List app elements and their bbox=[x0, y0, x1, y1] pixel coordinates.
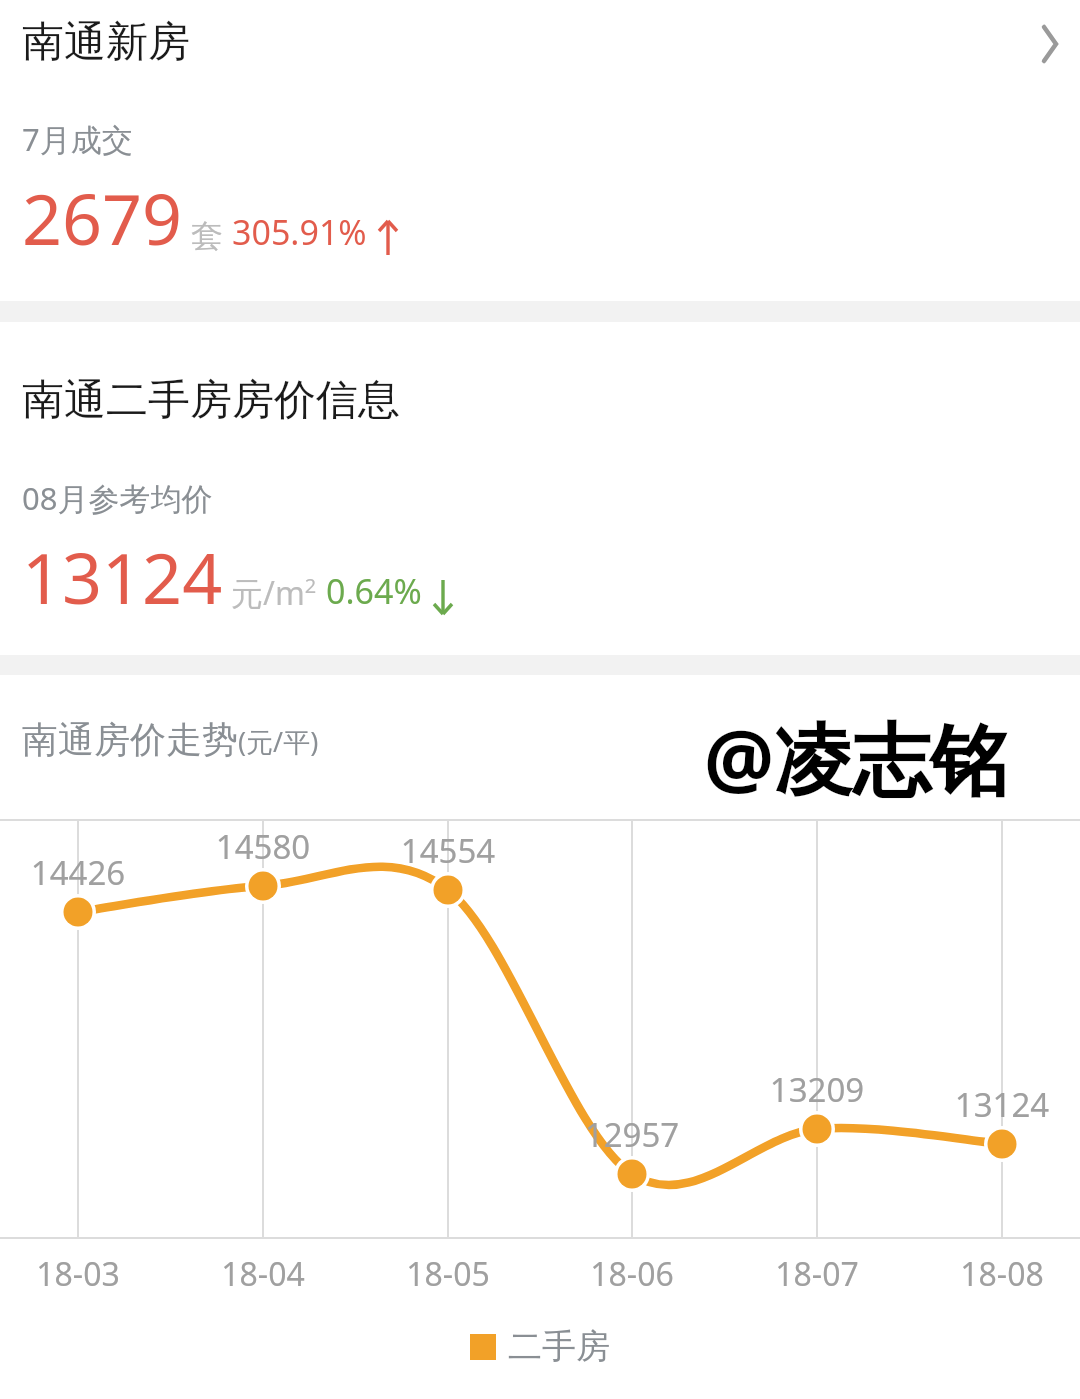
staticText: 元/m2 bbox=[231, 571, 317, 615]
staticText: 18-05 bbox=[388, 1252, 508, 1296]
button[interactable]: More, 南通新房 bbox=[1018, 12, 1080, 74]
staticText: 18-04 bbox=[203, 1252, 323, 1296]
staticText: 13124 bbox=[942, 1082, 1062, 1127]
staticText: 套 bbox=[191, 216, 223, 256]
staticText: 18-07 bbox=[757, 1252, 877, 1296]
staticText: 18-06 bbox=[572, 1252, 692, 1296]
staticText: 13124 bbox=[22, 529, 223, 624]
staticText: 12957 bbox=[572, 1112, 692, 1157]
staticText: 18-03 bbox=[18, 1252, 138, 1296]
staticText: 2679 bbox=[22, 170, 183, 265]
button[interactable]: 南通新房 bbox=[0, 0, 1080, 301]
staticText: 二手房 bbox=[508, 1325, 610, 1368]
staticText: 14426 bbox=[18, 850, 138, 895]
staticText: 0.64% bbox=[326, 568, 422, 614]
staticText: 南通房价走势(元/平) bbox=[22, 717, 319, 762]
button[interactable]: 南通二手房房价信息 bbox=[0, 322, 1080, 655]
staticText: 305.91% bbox=[232, 209, 367, 255]
staticText: 14580 bbox=[203, 824, 323, 869]
staticText: 08月参考均价 bbox=[22, 477, 213, 519]
staticText: 13209 bbox=[757, 1067, 877, 1112]
staticText: 18-08 bbox=[942, 1252, 1062, 1296]
staticText: 南通二手房房价信息 bbox=[22, 374, 400, 427]
staticText: 14554 bbox=[388, 828, 508, 873]
staticText: @凌志铭 bbox=[704, 705, 1009, 812]
staticText: 南通新房 bbox=[22, 16, 190, 69]
staticText: 7月成交 bbox=[22, 118, 133, 160]
